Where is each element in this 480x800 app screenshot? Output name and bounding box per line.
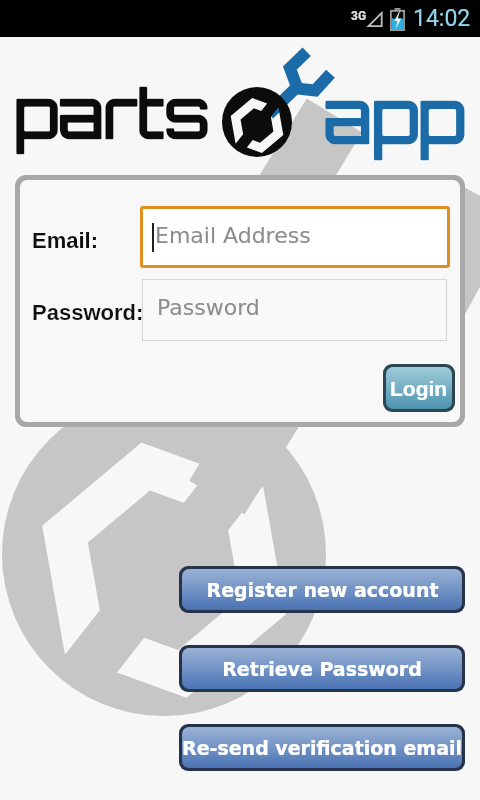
button[interactable]: Re-send verification email: [182, 727, 462, 768]
staticText: Re-send verification email: [182, 737, 462, 759]
staticText: 14:02: [413, 5, 471, 32]
staticText: Login: [390, 377, 448, 400]
staticText: parts: [14, 71, 210, 154]
button[interactable]: Register new account: [182, 569, 462, 610]
staticText: Password:: [32, 300, 144, 325]
staticText: app: [323, 72, 465, 160]
staticText: Retrieve Password: [222, 658, 422, 680]
staticText: Register new account: [206, 579, 439, 601]
staticText: Email:: [32, 228, 99, 253]
staticText: Password: [157, 295, 260, 321]
staticText: app: [323, 72, 465, 160]
staticText: parts: [14, 71, 210, 154]
button[interactable]: Email Address: [140, 206, 450, 268]
staticText: 3G: [351, 9, 367, 23]
button[interactable]: Retrieve Password: [182, 648, 462, 689]
button[interactable]: Login: [386, 367, 452, 409]
button[interactable]: Password: [142, 279, 447, 341]
staticText: Email Address: [155, 223, 311, 249]
